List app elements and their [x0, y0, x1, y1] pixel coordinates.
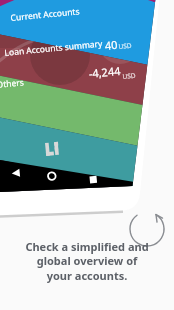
staticText: -4,244: [88, 63, 121, 81]
staticText: USD: [118, 41, 133, 51]
staticText: USD: [122, 71, 137, 81]
staticText: Check a simplified and global overview o…: [25, 239, 149, 284]
staticText: Current Accounts: [10, 5, 81, 24]
staticText: Others: [0, 76, 25, 91]
button[interactable]: Back: [7, 164, 24, 182]
staticText: 40: [104, 37, 118, 53]
button[interactable]: Recent apps: [84, 170, 101, 188]
staticText: Loan Accounts summary: [4, 37, 104, 59]
button[interactable]: Home: [42, 166, 62, 186]
